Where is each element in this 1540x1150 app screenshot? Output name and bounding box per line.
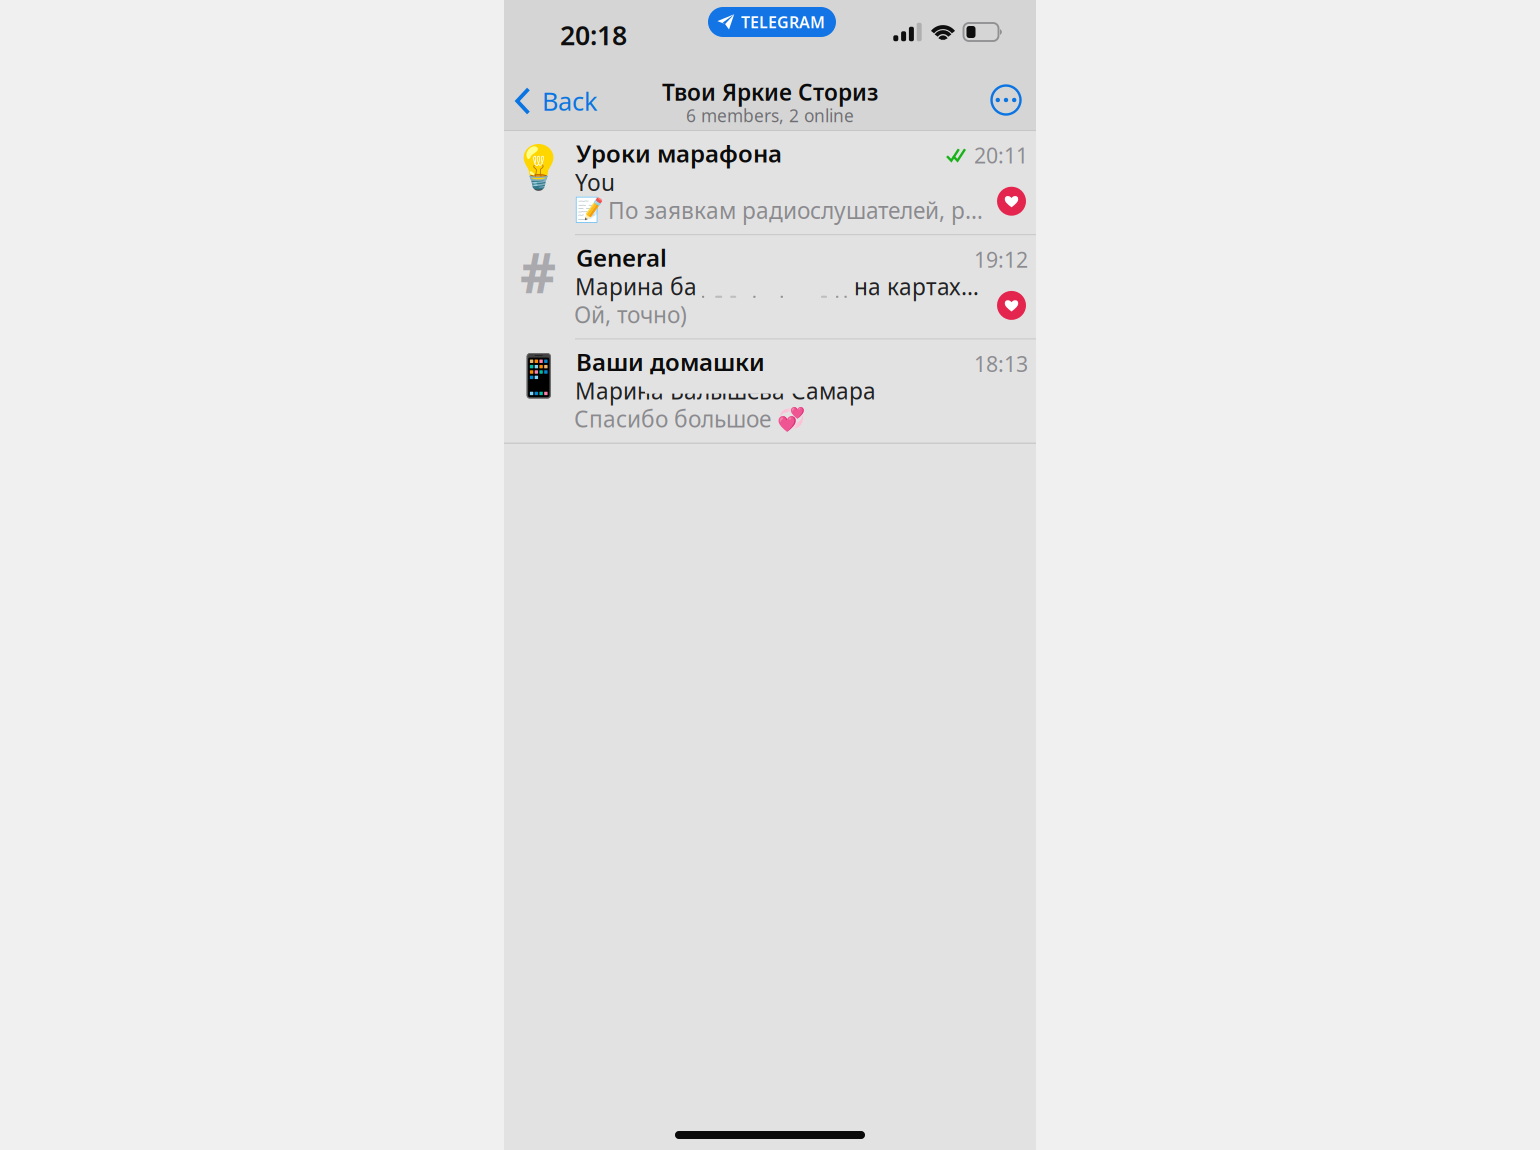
staticText: General [576, 241, 667, 273]
staticText: 💡 [511, 143, 564, 192]
staticText: 20:18 [560, 17, 627, 53]
staticText: Ваши домашки [576, 346, 765, 378]
staticText: # [520, 234, 556, 309]
staticText: You [575, 167, 615, 197]
button[interactable]: 📱 [504, 340, 1036, 443]
button[interactable]: More options [983, 77, 1029, 123]
staticText: Back [542, 84, 598, 118]
button[interactable]: Back [508, 75, 608, 127]
staticText: 📱 [512, 352, 563, 399]
staticText: Спасибо большое 💞 [574, 403, 805, 434]
button[interactable]: 💡 [504, 131, 1036, 234]
staticText: 18:13 [974, 349, 1028, 378]
staticText: Твои Яркие Сториз [662, 77, 878, 107]
staticText: Марина Балышева Самара [575, 375, 876, 406]
staticText: TELEGRAM [741, 11, 825, 33]
staticText: 20:11 [974, 141, 1028, 169]
staticText: Марина ба [575, 271, 697, 301]
staticText: 19:12 [974, 245, 1028, 273]
staticText: 📝 [574, 196, 604, 224]
button[interactable]: # [504, 235, 1036, 338]
staticText: 6 members, 2 online [686, 104, 854, 127]
staticText: Ой, точно) [574, 299, 687, 329]
staticText: Уроки марафона [576, 137, 782, 169]
staticText: на картах… [854, 271, 979, 301]
button[interactable]: TELEGRAM [708, 7, 836, 37]
staticText: По заявкам радиослушателей, расск… [608, 195, 986, 225]
